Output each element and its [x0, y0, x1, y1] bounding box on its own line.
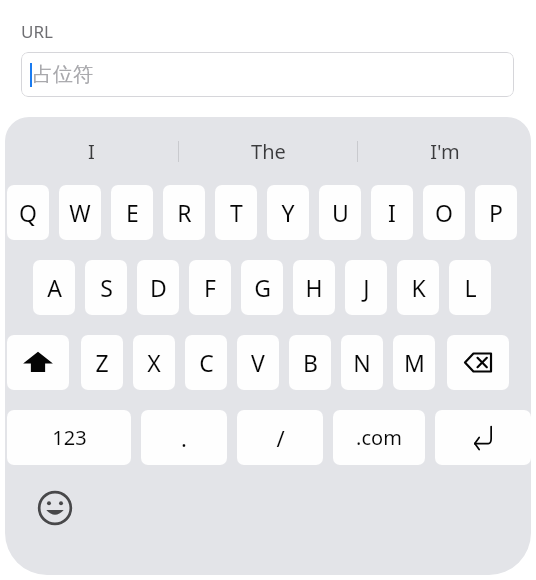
button[interactable]: T [215, 185, 257, 240]
button[interactable]: H [293, 260, 335, 315]
button[interactable]: I [5, 117, 178, 185]
button[interactable]: Return [435, 410, 531, 465]
button[interactable]: W [59, 185, 101, 240]
button[interactable]: J [345, 260, 387, 315]
button[interactable]: Q [7, 185, 49, 240]
staticText: H [305, 272, 323, 303]
button[interactable]: R [163, 185, 205, 240]
button[interactable]: U [319, 185, 361, 240]
staticText: F [204, 272, 216, 303]
button[interactable]: Z [81, 335, 123, 390]
button[interactable]: X [133, 335, 175, 390]
staticText: The [251, 138, 286, 165]
button[interactable]: O [423, 185, 465, 240]
staticText: N [353, 347, 371, 378]
button[interactable]: L [449, 260, 491, 315]
button[interactable]: B [289, 335, 331, 390]
staticText: S [100, 272, 113, 303]
staticText: T [230, 197, 243, 228]
staticText: V [251, 347, 265, 378]
staticText: / [276, 423, 285, 453]
button[interactable]: Backspace [447, 335, 509, 390]
staticText: R [177, 197, 192, 228]
staticText: Q [19, 197, 37, 228]
staticText: I [388, 197, 396, 228]
staticText: K [411, 272, 426, 303]
button[interactable]: C [185, 335, 227, 390]
staticText: I'm [430, 138, 460, 165]
staticText: 123 [52, 424, 87, 451]
staticText: I [88, 138, 95, 165]
button[interactable]: N [341, 335, 383, 390]
button[interactable]: A [33, 260, 75, 315]
button[interactable]: / [237, 410, 323, 465]
button[interactable]: M [393, 335, 435, 390]
staticText: .com [356, 424, 402, 451]
staticText: O [435, 197, 453, 228]
button[interactable]: Y [267, 185, 309, 240]
staticText: Z [95, 347, 109, 378]
button[interactable]: .com [333, 410, 425, 465]
staticText: J [363, 272, 370, 303]
staticText: D [150, 272, 167, 303]
button[interactable]: 占位符 [21, 52, 514, 97]
button[interactable]: P [475, 185, 517, 240]
button[interactable]: K [397, 260, 439, 315]
button[interactable]: 123 [7, 410, 131, 465]
staticText: W [69, 197, 91, 228]
button[interactable]: I [371, 185, 413, 240]
button[interactable]: F [189, 260, 231, 315]
staticText: L [464, 272, 477, 303]
button[interactable]: Shift [7, 335, 69, 390]
staticText: 占位符 [33, 62, 93, 87]
button[interactable]: D [137, 260, 179, 315]
staticText: B [303, 347, 318, 378]
staticText: U [332, 197, 349, 228]
button[interactable]: Emoji keyboard [33, 486, 77, 530]
button[interactable]: G [241, 260, 283, 315]
staticText: P [489, 197, 503, 228]
staticText: M [404, 347, 425, 378]
staticText: . [181, 423, 187, 453]
staticText: X [147, 347, 161, 378]
button[interactable]: The [179, 117, 357, 185]
button[interactable]: E [111, 185, 153, 240]
staticText: C [199, 347, 214, 378]
staticText: A [47, 272, 62, 303]
button[interactable]: I'm [358, 117, 531, 185]
button[interactable]: S [85, 260, 127, 315]
staticText: URL [21, 20, 53, 43]
staticText: Y [281, 197, 295, 228]
staticText: G [254, 272, 271, 303]
button[interactable]: . [141, 410, 227, 465]
staticText: E [126, 197, 139, 228]
button[interactable]: V [237, 335, 279, 390]
